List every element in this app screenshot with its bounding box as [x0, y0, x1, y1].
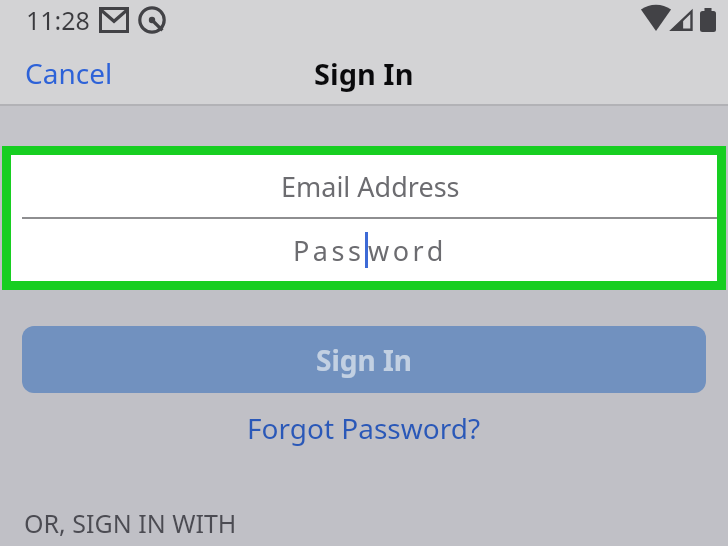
staticText: Pass [293, 232, 365, 269]
staticText: OR, SIGN IN WITH [24, 506, 237, 540]
staticText: Forgot Password? [247, 409, 481, 447]
button[interactable]: Email Address [11, 155, 717, 217]
staticText: Sign In [316, 341, 413, 379]
button[interactable]: Pass [17, 219, 723, 281]
button[interactable]: Cancel [25, 54, 113, 92]
button[interactable]: Sign In [22, 326, 706, 393]
staticText: Sign In [314, 54, 414, 93]
staticText: word [368, 232, 447, 269]
button[interactable]: Forgot Password? [247, 409, 481, 447]
staticText: Email Address [281, 168, 460, 205]
staticText: 11:28 [26, 3, 90, 37]
staticText: Cancel [25, 54, 113, 92]
